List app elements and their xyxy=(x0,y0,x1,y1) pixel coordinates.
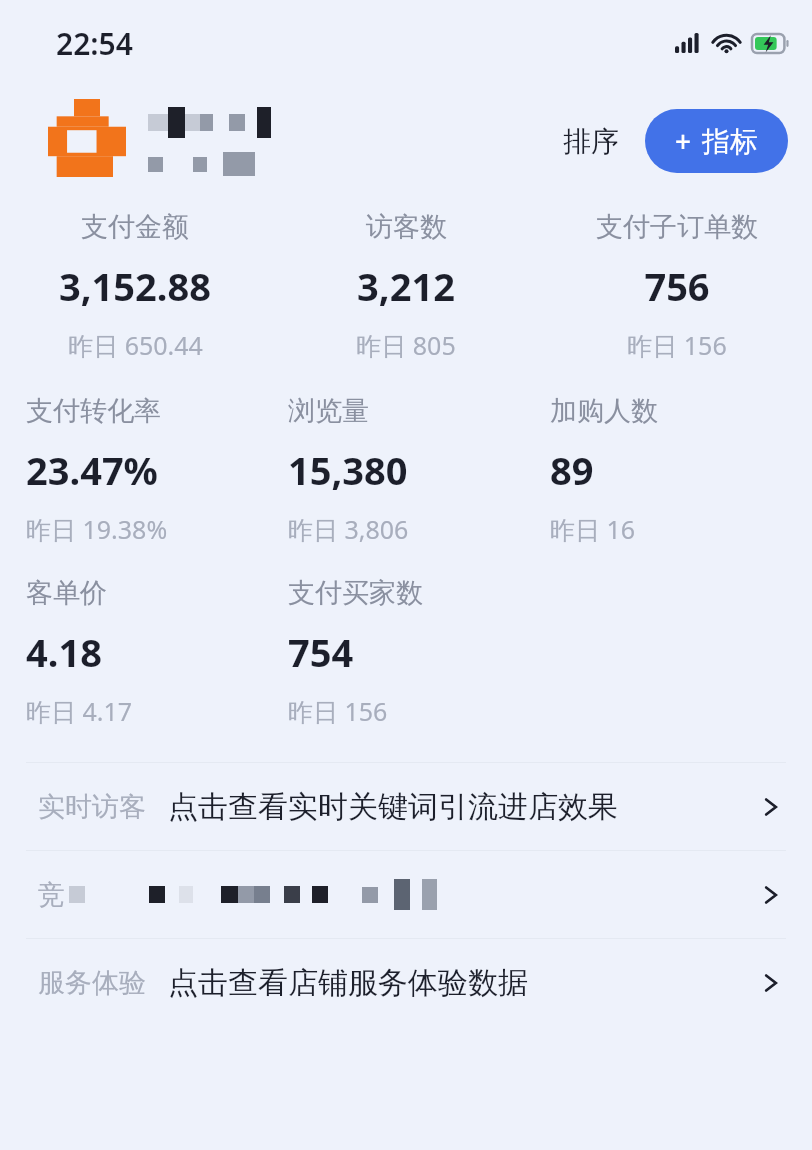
staticText: 754 xyxy=(288,626,354,678)
staticText: 15,380 xyxy=(288,444,408,496)
button[interactable]: + xyxy=(645,109,788,173)
staticText: 昨日 4.17 xyxy=(26,694,133,728)
staticText: 3,212 xyxy=(357,260,455,312)
staticText: 实时访客 xyxy=(38,790,146,824)
other: 查看详情 xyxy=(760,972,782,994)
staticText: 支付金额 xyxy=(81,210,189,244)
button[interactable]: 实时访客 xyxy=(0,763,812,850)
staticText: 支付子订单数 xyxy=(596,210,758,244)
staticText: 服务体验 xyxy=(38,966,146,1000)
button[interactable]: 服务体验 xyxy=(0,939,812,1026)
button[interactable]: 支付转化率 xyxy=(26,394,288,546)
staticText: 指标 xyxy=(702,124,758,159)
button[interactable]: 加购人数 xyxy=(550,394,812,546)
staticText: 昨日 19.38% xyxy=(26,512,168,546)
staticText: 访客数 xyxy=(366,210,447,244)
button[interactable]: 排序 xyxy=(557,116,625,167)
button[interactable]: 支付金额 xyxy=(0,210,270,362)
staticText: 点击查看店铺服务体验数据 xyxy=(168,964,528,1002)
staticText: 756 xyxy=(644,260,710,312)
staticText: 浏览量 xyxy=(288,394,369,428)
staticText: 支付买家数 xyxy=(288,576,423,610)
staticText: 昨日 650.44 xyxy=(68,328,203,362)
staticText: 加购人数 xyxy=(550,394,658,428)
button[interactable]: 支付买家数 xyxy=(288,576,550,728)
staticText: 3,152.88 xyxy=(59,260,211,312)
button[interactable]: 竞 xyxy=(0,851,812,938)
staticText: 22:54 xyxy=(56,23,133,64)
staticText: 昨日 156 xyxy=(288,694,388,728)
button[interactable]: 浏览量 xyxy=(288,394,550,546)
button[interactable]: 客单价 xyxy=(26,576,288,728)
button[interactable]: 支付子订单数 xyxy=(541,210,812,362)
staticText: 89 xyxy=(550,444,594,496)
staticText: 客单价 xyxy=(26,576,107,610)
staticText: 竞 xyxy=(38,878,65,912)
staticText: + xyxy=(675,122,692,160)
staticText: 昨日 3,806 xyxy=(288,512,409,546)
staticText: 点击查看实时关键词引流进店效果 xyxy=(168,788,618,826)
staticText: 昨日 805 xyxy=(356,328,456,362)
staticText: 昨日 156 xyxy=(627,328,727,362)
staticText: 排序 xyxy=(563,124,619,159)
staticText: 4.18 xyxy=(26,626,102,678)
other: 查看详情 xyxy=(760,796,782,818)
other: 查看详情 xyxy=(760,884,782,906)
staticText: 昨日 16 xyxy=(550,512,636,546)
staticText: 23.47% xyxy=(26,444,158,496)
button[interactable]: 访客数 xyxy=(270,210,541,362)
staticText: 支付转化率 xyxy=(26,394,161,428)
